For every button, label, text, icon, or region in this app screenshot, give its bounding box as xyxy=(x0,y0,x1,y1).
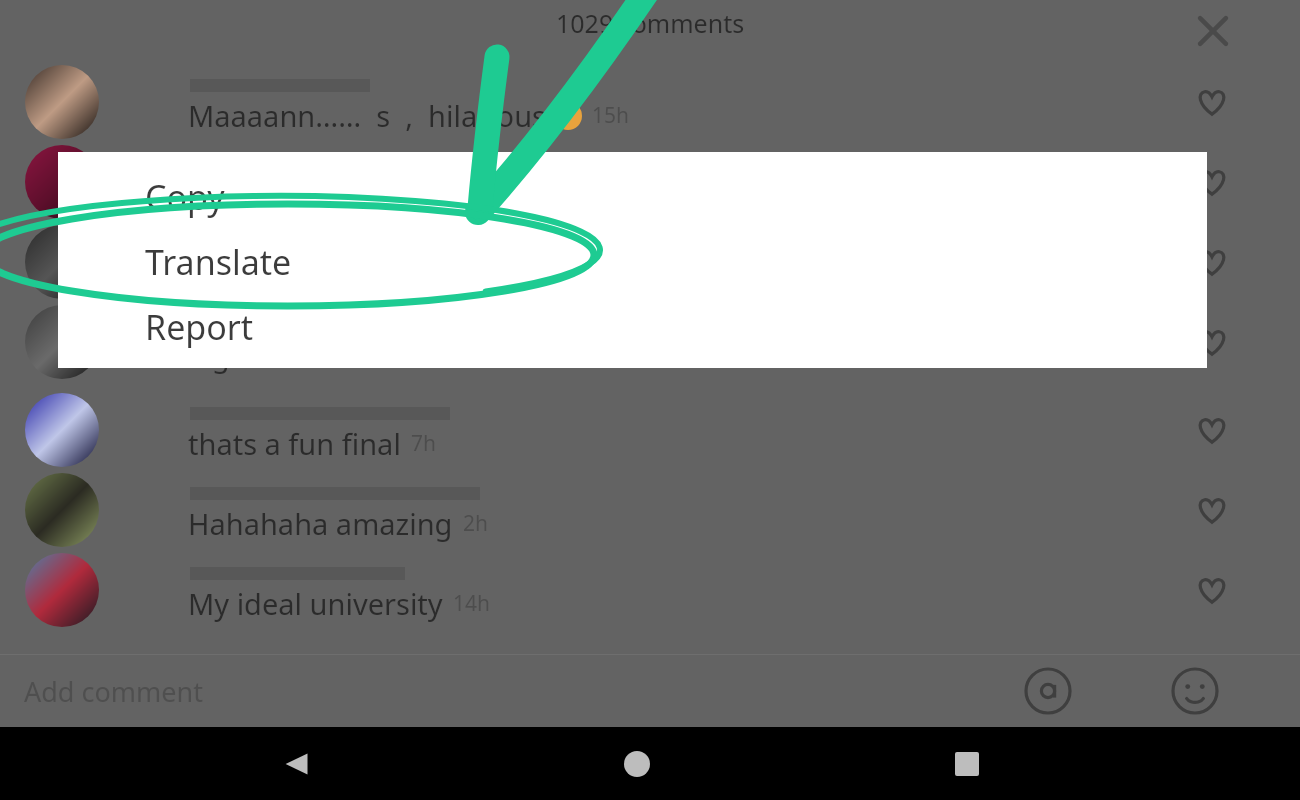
staticText: 15h xyxy=(592,101,630,130)
button[interactable]: Recents xyxy=(935,727,999,800)
button[interactable]: Like xyxy=(1182,302,1242,382)
button[interactable]: Like xyxy=(1182,62,1242,142)
staticText: 16h xyxy=(254,341,292,370)
button[interactable]: Close xyxy=(1182,0,1244,62)
staticText: 1029 comments xyxy=(556,6,745,40)
staticText: 7h xyxy=(411,429,436,458)
staticText: Copy xyxy=(145,174,225,220)
button[interactable]: Hahahaha amazing xyxy=(0,470,1300,550)
button[interactable]: Like xyxy=(0,142,1300,222)
staticText: Report xyxy=(145,304,254,350)
button[interactable]: Report xyxy=(58,294,1207,359)
staticText: 2h xyxy=(463,509,488,538)
button[interactable]: Like xyxy=(1182,550,1242,630)
button[interactable]: Back xyxy=(265,727,329,800)
staticText: Translate xyxy=(145,239,292,285)
button[interactable]: thats a fun final xyxy=(0,390,1300,470)
button[interactable]: Mention xyxy=(1018,655,1078,727)
staticText: Hahahaha amazing xyxy=(188,504,453,543)
staticText: My ideal university xyxy=(188,584,443,623)
staticText: legs xyxy=(188,336,244,375)
button[interactable]: Emoji xyxy=(1165,655,1225,727)
button[interactable]: Like xyxy=(1182,470,1242,550)
button[interactable]: Copy xyxy=(58,164,1207,229)
button[interactable]: Like xyxy=(1182,390,1242,470)
staticText: 14h xyxy=(453,589,491,618)
button[interactable]: Translate xyxy=(58,229,1207,294)
button[interactable]: Home xyxy=(605,727,669,800)
staticText: Maaaann…… s , hilarious xyxy=(188,96,546,135)
staticText: thats a fun final xyxy=(188,424,401,463)
button[interactable]: Maaaann…… s , hilarious xyxy=(0,62,1300,142)
button[interactable]: Like xyxy=(1182,222,1242,302)
button[interactable]: Like xyxy=(1182,142,1242,222)
button[interactable]: Like xyxy=(0,222,1300,302)
staticText: Add comment xyxy=(24,673,203,710)
button[interactable]: My ideal university xyxy=(0,550,1300,630)
button[interactable]: legs xyxy=(0,302,1300,382)
